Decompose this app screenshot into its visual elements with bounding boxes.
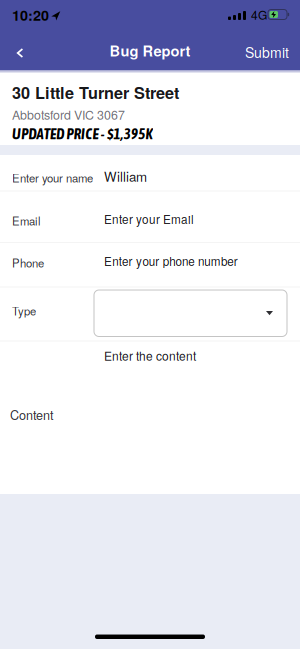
button[interactable]: Back [10, 43, 30, 63]
button[interactable]: Enter your name [94, 157, 288, 190]
staticText: Email [12, 212, 41, 229]
staticText: 10:20 [12, 4, 49, 25]
staticText: 4G [251, 6, 267, 23]
button[interactable]: Phone [94, 243, 288, 286]
staticText: Type [12, 302, 36, 319]
staticText: 30 Little Turner Street [12, 81, 179, 104]
staticText: Submit [245, 42, 289, 62]
button[interactable]: Submit [245, 42, 289, 62]
staticText: Enter your phone number [104, 252, 238, 269]
staticText: UPDATED PRICE - $1,395K [12, 125, 152, 142]
staticText: William [104, 166, 147, 186]
staticText: Enter your Email [104, 210, 194, 227]
staticText: Enter your name [12, 169, 93, 186]
staticText: Abbotsford VIC 3067 [12, 105, 125, 123]
staticText: Phone [12, 254, 44, 271]
button[interactable]: Email [94, 192, 288, 241]
staticText: Enter the content [104, 347, 196, 364]
staticText: Bug Report [109, 40, 190, 61]
staticText: Content [10, 405, 54, 424]
button[interactable]: Type [94, 290, 287, 336]
button[interactable]: Content [94, 342, 288, 492]
